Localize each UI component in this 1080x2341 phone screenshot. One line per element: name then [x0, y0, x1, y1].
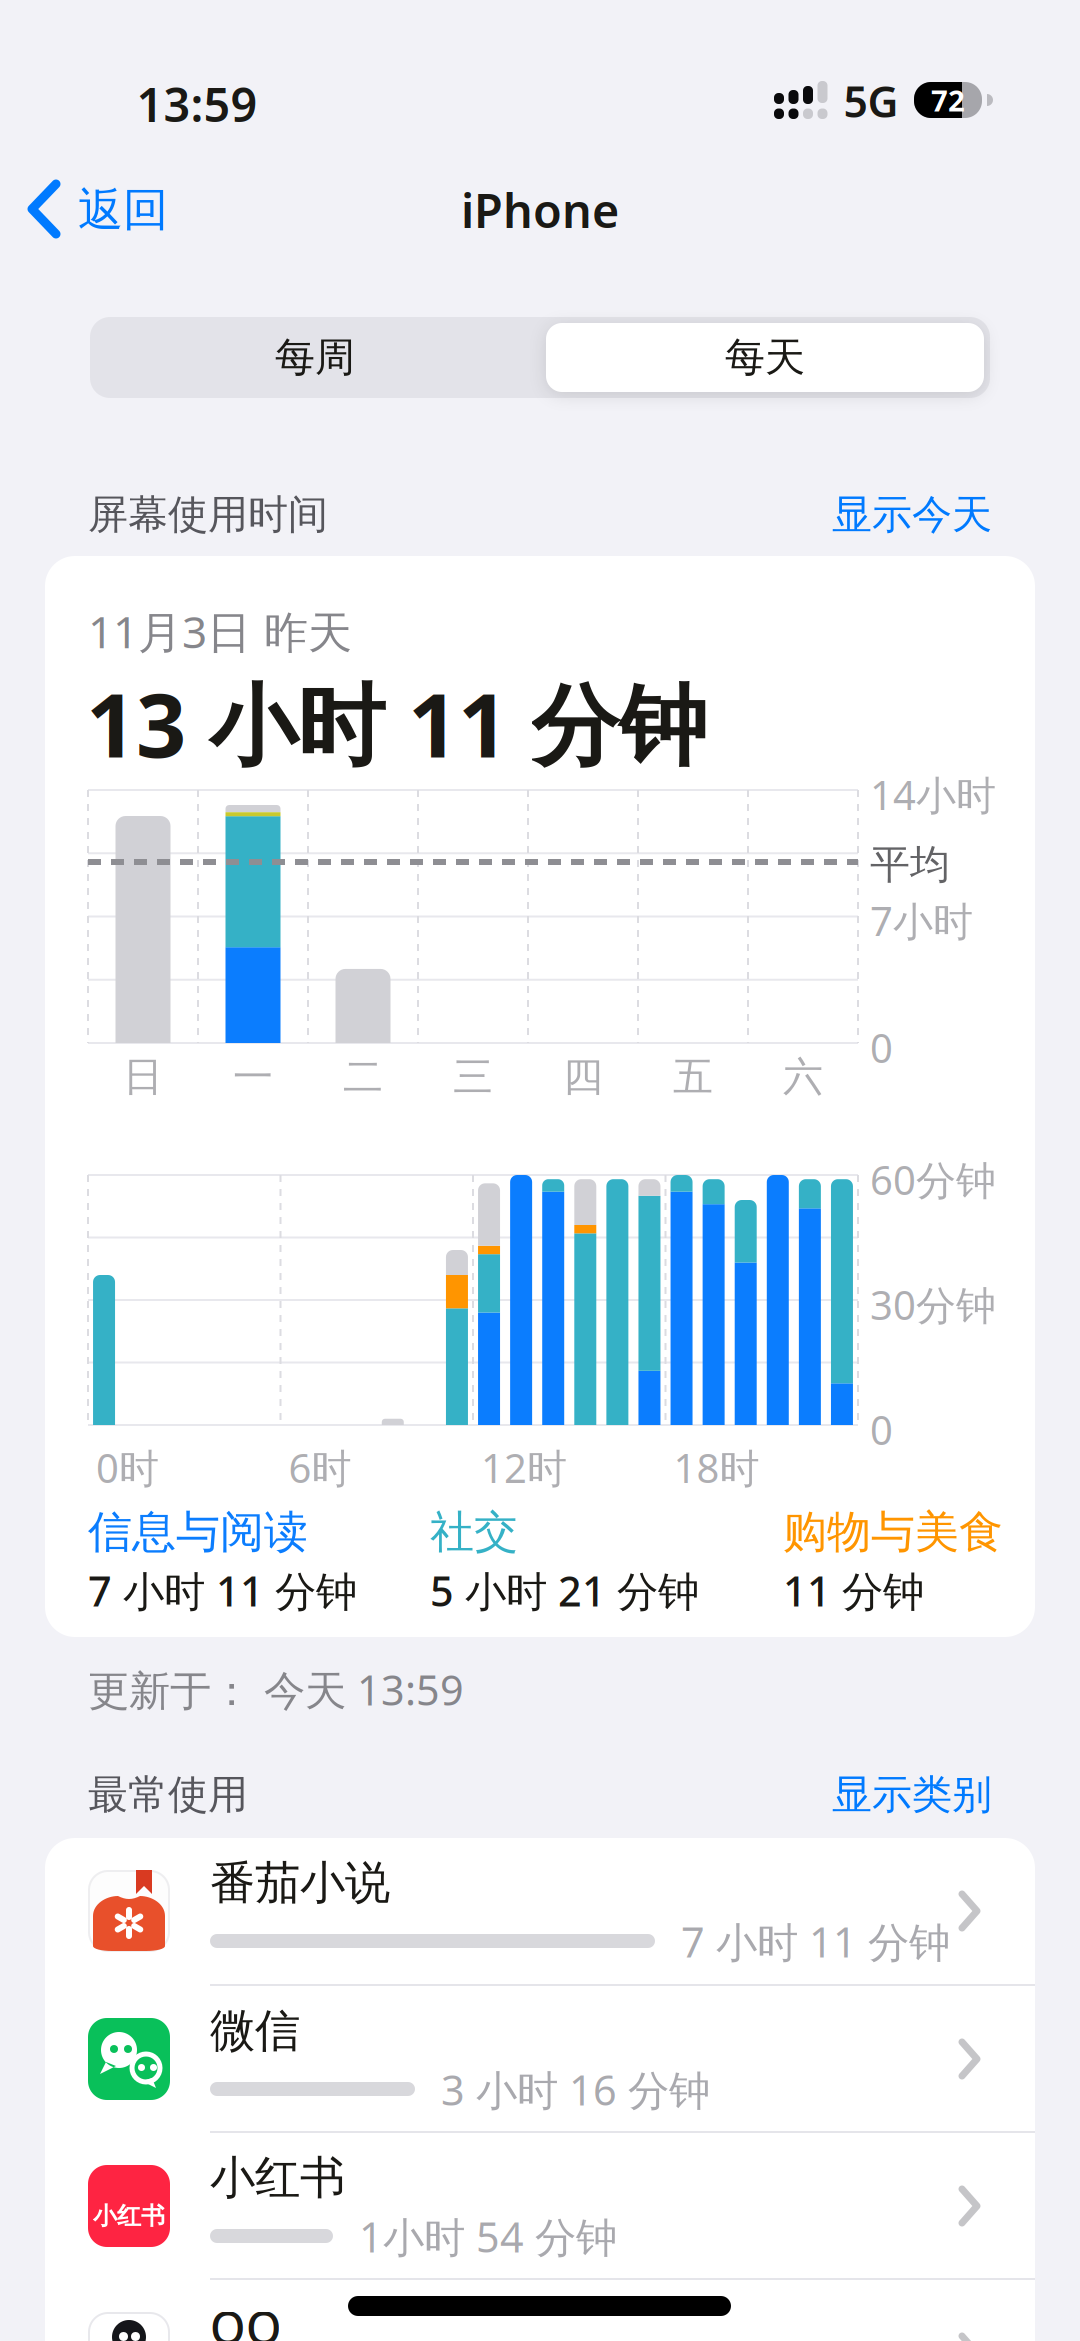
staticText: 微信 [210, 2003, 300, 2059]
staticText: 信息与阅读 [88, 1505, 308, 1559]
button[interactable]: 小红书 [45, 2133, 1035, 2279]
staticText: 0 [870, 1403, 893, 1456]
staticText: iPhone [461, 179, 619, 241]
button[interactable]: QQ [45, 2280, 1035, 2341]
staticText: 日 [123, 1052, 163, 1101]
staticText: 11月3日 昨天 [88, 602, 352, 660]
staticText: 屏幕使用时间 [88, 490, 328, 539]
button[interactable]: 显示今天 [45, 490, 992, 539]
staticText: 五 [673, 1052, 713, 1101]
staticText: 番茄小说 [210, 1855, 390, 1911]
staticText: 18时 [673, 1441, 759, 1494]
staticText: 每天 [725, 333, 805, 382]
staticText: 5 小时 21 分钟 [430, 1563, 699, 1618]
staticText: 12时 [481, 1441, 567, 1494]
staticText: 四 [563, 1052, 603, 1101]
staticText: 0 [870, 1021, 893, 1074]
staticText: 60分钟 [870, 1153, 996, 1206]
button[interactable]: 每天 [546, 323, 984, 392]
staticText: 6时 [288, 1441, 351, 1494]
button[interactable]: 显示类别 [45, 1770, 992, 1819]
staticText: 社交 [430, 1505, 518, 1559]
button[interactable]: 每周 [90, 317, 540, 398]
button[interactable]: 微信 [45, 1986, 1035, 2132]
staticText: 最常使用 [88, 1770, 248, 1819]
staticText: 返回 [78, 182, 168, 238]
staticText: 一 [233, 1052, 273, 1101]
staticText: 显示类别 [832, 1770, 992, 1819]
staticText: 30分钟 [870, 1278, 996, 1331]
staticText: 7 小时 11 分钟 [681, 1914, 950, 1969]
button[interactable]: 返回 [30, 180, 168, 240]
staticText: 13:59 [136, 73, 257, 135]
staticText: 14小时 [870, 768, 996, 821]
staticText: 3 小时 16 分钟 [441, 2062, 710, 2117]
staticText: 0时 [96, 1441, 159, 1494]
staticText: 购物与美食 [783, 1505, 1003, 1559]
staticText: 1小时 54 分钟 [359, 2209, 617, 2264]
staticText: 72 [931, 80, 965, 119]
staticText: 小红书 [210, 2150, 345, 2206]
staticText: 平均 [870, 840, 950, 889]
button[interactable]: 番茄小说 [45, 1838, 1035, 1984]
staticText: 13 小时 11 分钟 [86, 665, 707, 782]
staticText: 显示今天 [832, 490, 992, 539]
staticText: 更新于： 今天 13:59 [88, 1662, 464, 1717]
staticText: 7小时 [870, 894, 973, 947]
staticText: QQ [210, 2297, 282, 2341]
staticText: 三 [453, 1052, 493, 1101]
staticText: 小红书 [93, 2201, 165, 2231]
staticText: 5G [843, 73, 898, 129]
staticText: 7 小时 11 分钟 [88, 1563, 357, 1618]
staticText: 每周 [275, 333, 355, 382]
staticText: 二 [343, 1052, 383, 1101]
staticText: 六 [783, 1052, 823, 1101]
staticText: 11 分钟 [783, 1563, 924, 1618]
